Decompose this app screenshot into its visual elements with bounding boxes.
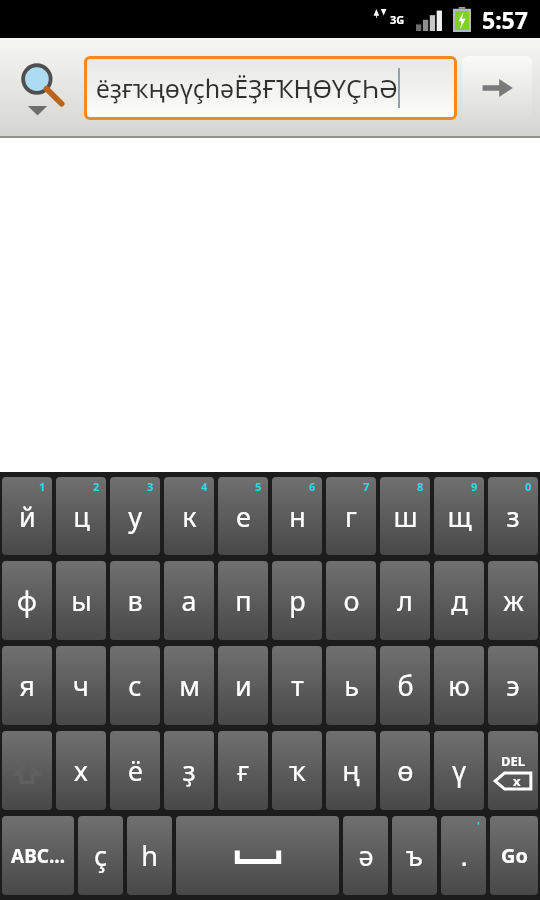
button[interactable]: ф xyxy=(2,561,52,640)
button[interactable]: ҡ xyxy=(272,731,322,810)
staticText: ёҙғҡңөүçһәЁҘҒҠҢӨҮÇҺӘ xyxy=(96,71,398,105)
staticText: ы xyxy=(71,582,92,619)
button[interactable]: ә xyxy=(343,816,388,895)
button[interactable]: ҙ xyxy=(164,731,214,810)
staticText: д xyxy=(451,582,468,619)
staticText: ғ xyxy=(237,752,249,789)
staticText: Go xyxy=(501,842,528,869)
staticText: а xyxy=(181,582,197,619)
button[interactable]: с xyxy=(110,646,160,725)
staticText: к xyxy=(182,498,197,535)
button[interactable]: а xyxy=(164,561,214,640)
button[interactable]: м xyxy=(164,646,214,725)
staticText: 9 xyxy=(471,479,478,494)
staticText: ц xyxy=(73,498,90,535)
staticText: ь xyxy=(344,667,359,704)
staticText: 5:57 xyxy=(482,4,528,35)
staticText: н xyxy=(289,498,306,535)
button[interactable]: Search provider xyxy=(0,38,84,138)
staticText: DEL xyxy=(501,752,526,770)
button[interactable]: и xyxy=(218,646,268,725)
button[interactable]: й xyxy=(2,477,52,555)
staticText: ҡ xyxy=(289,752,306,789)
staticText: и xyxy=(235,667,252,704)
staticText: ABC... xyxy=(11,843,65,869)
button[interactable]: д xyxy=(434,561,484,640)
staticText: ч xyxy=(73,667,89,704)
button[interactable]: Shift xyxy=(2,731,52,810)
staticText: ҙ xyxy=(182,752,196,789)
button[interactable]: к xyxy=(164,477,214,555)
staticText: 1 xyxy=(39,479,46,494)
button[interactable]: о xyxy=(326,561,376,640)
staticText: ү xyxy=(452,752,466,789)
button[interactable]: ң xyxy=(326,731,376,810)
staticText: 7 xyxy=(363,479,370,494)
button[interactable]: ғ xyxy=(218,731,268,810)
button[interactable]: ABC... xyxy=(2,816,74,895)
staticText: 6 xyxy=(309,479,316,494)
button[interactable]: ъ xyxy=(392,816,437,895)
staticText: 8 xyxy=(417,479,424,494)
button[interactable]: л xyxy=(380,561,430,640)
staticText: ж xyxy=(503,582,524,619)
button[interactable]: б xyxy=(380,646,430,725)
staticText: р xyxy=(289,582,306,619)
button[interactable]: һ xyxy=(127,816,172,895)
staticText: с xyxy=(128,667,142,704)
button[interactable]: ж xyxy=(488,561,538,640)
button[interactable]: ю xyxy=(434,646,484,725)
button[interactable]: Go xyxy=(490,816,538,895)
button[interactable]: . xyxy=(441,816,486,895)
button[interactable]: з xyxy=(488,477,538,555)
staticText: г xyxy=(345,498,357,535)
button[interactable]: щ xyxy=(434,477,484,555)
button[interactable]: ё xyxy=(110,731,160,810)
staticText: п xyxy=(235,582,252,619)
button[interactable]: т xyxy=(272,646,322,725)
button[interactable]: е xyxy=(218,477,268,555)
button[interactable]: ь xyxy=(326,646,376,725)
button[interactable]: Delete xyxy=(488,731,538,810)
staticText: в xyxy=(127,582,143,619)
button[interactable]: ц xyxy=(56,477,106,555)
staticText: ң xyxy=(342,752,360,789)
staticText: x xyxy=(513,772,521,790)
staticText: э xyxy=(506,667,520,704)
staticText: ш xyxy=(393,498,418,535)
button[interactable]: р xyxy=(272,561,322,640)
staticText: х xyxy=(74,752,88,789)
button[interactable]: в xyxy=(110,561,160,640)
staticText: е xyxy=(236,498,251,535)
staticText: ' xyxy=(477,818,480,833)
staticText: ә xyxy=(358,837,374,874)
button[interactable]: ч xyxy=(56,646,106,725)
button[interactable]: п xyxy=(218,561,268,640)
button[interactable]: ү xyxy=(434,731,484,810)
staticText: щ xyxy=(447,498,472,535)
staticText: я xyxy=(19,667,35,704)
staticText: . xyxy=(460,837,468,874)
staticText: з xyxy=(506,498,520,535)
button[interactable]: у xyxy=(110,477,160,555)
button[interactable]: н xyxy=(272,477,322,555)
button[interactable]: ы xyxy=(56,561,106,640)
staticText: ю xyxy=(448,667,470,704)
staticText: 5 xyxy=(255,479,262,494)
staticText: 2 xyxy=(93,479,100,494)
button[interactable]: х xyxy=(56,731,106,810)
button[interactable]: ёҙғҡңөүçһәЁҘҒҠҢӨҮÇҺӘ xyxy=(87,59,454,117)
button[interactable]: я xyxy=(2,646,52,725)
button[interactable]: Space xyxy=(176,816,339,895)
button[interactable]: ш xyxy=(380,477,430,555)
staticText: ъ xyxy=(406,837,423,874)
staticText: ө xyxy=(397,752,414,789)
staticText: т xyxy=(291,667,304,704)
staticText: 3 xyxy=(147,479,154,494)
button[interactable]: Go xyxy=(462,56,532,120)
button[interactable]: ç xyxy=(78,816,123,895)
button[interactable]: г xyxy=(326,477,376,555)
staticText: л xyxy=(397,582,413,619)
button[interactable]: ө xyxy=(380,731,430,810)
button[interactable]: э xyxy=(488,646,538,725)
